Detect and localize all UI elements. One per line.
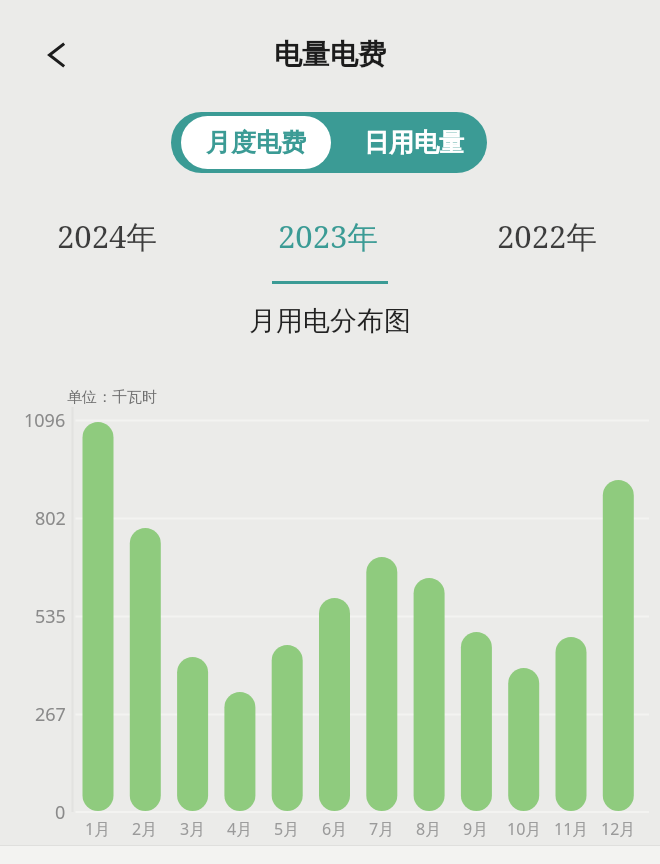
staticText: 10月 bbox=[507, 818, 542, 840]
staticText: 8月 bbox=[416, 818, 442, 840]
button[interactable] bbox=[36, 35, 76, 75]
staticText: 267 bbox=[35, 702, 66, 726]
button[interactable]: 日用电量 bbox=[341, 112, 487, 173]
staticText: 2024年 bbox=[57, 215, 158, 257]
staticText: 2023年 bbox=[278, 215, 379, 257]
staticText: 6月 bbox=[322, 818, 348, 840]
button[interactable]: 2022年 bbox=[437, 214, 657, 258]
staticText: 7月 bbox=[369, 818, 395, 840]
button[interactable]: 2024年 bbox=[0, 214, 217, 258]
staticText: 1月 bbox=[85, 818, 111, 840]
staticText: 4月 bbox=[227, 818, 253, 840]
button[interactable]: 月度电费 bbox=[181, 116, 331, 169]
staticText: 电量电费 bbox=[274, 37, 386, 72]
staticText: 月度电费 bbox=[206, 127, 306, 158]
button[interactable]: 2023年 bbox=[218, 214, 438, 258]
staticText: 3月 bbox=[180, 818, 206, 840]
staticText: 535 bbox=[35, 604, 66, 628]
staticText: 11月 bbox=[554, 818, 589, 840]
staticText: 9月 bbox=[463, 818, 489, 840]
staticText: 12月 bbox=[601, 818, 636, 840]
staticText: 月用电分布图 bbox=[249, 304, 411, 338]
staticText: 0 bbox=[55, 800, 66, 824]
staticText: 2月 bbox=[132, 818, 158, 840]
staticText: 802 bbox=[35, 506, 66, 530]
staticText: 日用电量 bbox=[364, 127, 464, 158]
staticText: 1096 bbox=[24, 408, 66, 432]
staticText: 单位：千瓦时 bbox=[67, 388, 157, 407]
staticText: 2022年 bbox=[497, 215, 598, 257]
staticText: 5月 bbox=[274, 818, 300, 840]
